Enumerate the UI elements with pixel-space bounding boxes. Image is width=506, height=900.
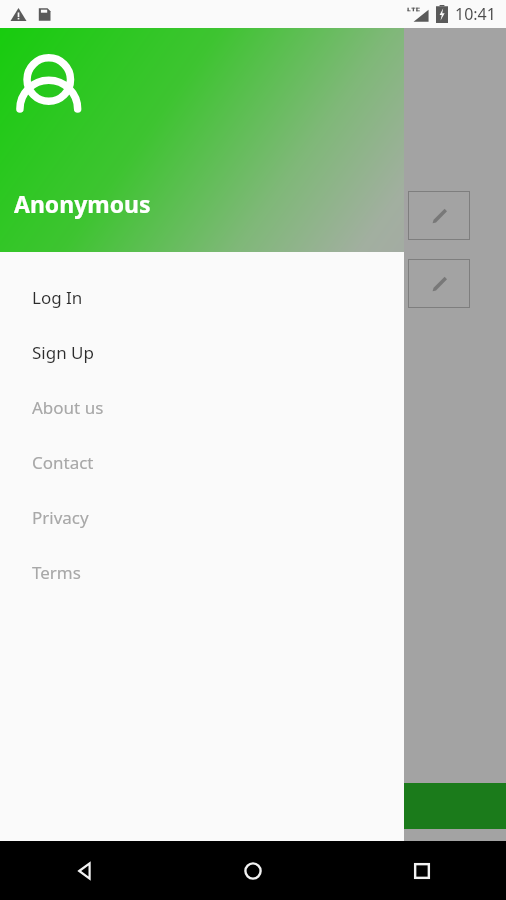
staticText: Terms <box>32 561 81 584</box>
button[interactable]: Edit <box>408 191 470 240</box>
button[interactable]: Edit <box>408 259 470 308</box>
button[interactable]: Sign Up <box>0 325 404 380</box>
staticText: Log In <box>32 286 83 309</box>
button[interactable]: Privacy <box>0 490 404 545</box>
button[interactable]: Anonymous <box>0 28 404 252</box>
button[interactable]: Back <box>0 841 168 900</box>
staticText: About us <box>32 396 104 419</box>
button[interactable]: About us <box>0 380 404 435</box>
button[interactable]: Terms <box>0 545 404 600</box>
staticText: Privacy <box>32 506 89 529</box>
staticText: Sign Up <box>32 341 94 364</box>
button[interactable]: Contact <box>0 435 404 490</box>
staticText: Contact <box>32 451 94 474</box>
staticText: 10:41 <box>455 3 496 25</box>
button[interactable] <box>0 783 506 829</box>
button[interactable]: Log In <box>0 270 404 325</box>
staticText: Anonymous <box>14 188 151 219</box>
button[interactable]: Recent apps <box>337 841 506 900</box>
button[interactable]: Home <box>168 841 337 900</box>
